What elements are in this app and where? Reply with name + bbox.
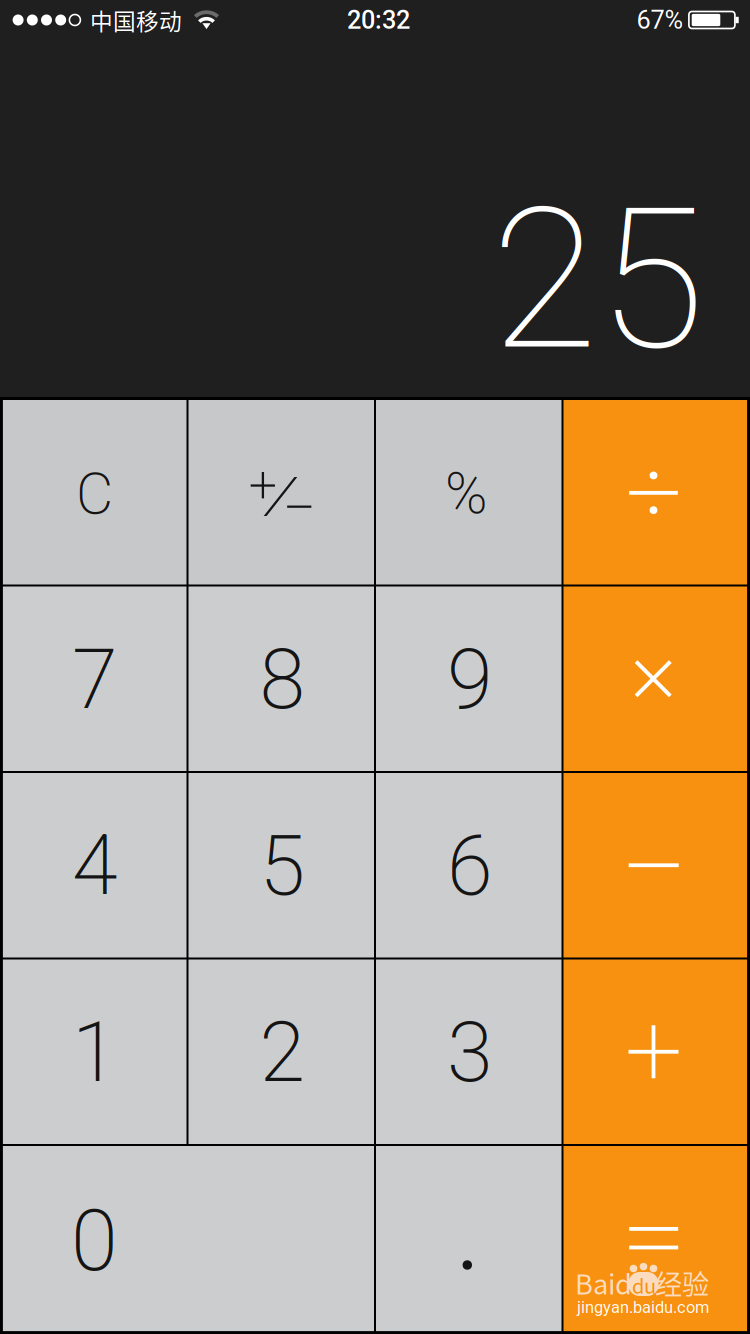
button[interactable] — [3, 959, 186, 1144]
button[interactable] — [563, 400, 747, 584]
button[interactable] — [188, 959, 374, 1144]
staticText: du — [632, 1270, 656, 1299]
button[interactable] — [376, 1146, 561, 1331]
staticText: 5 — [259, 818, 305, 915]
staticText: 25 — [491, 166, 705, 394]
button[interactable] — [188, 586, 374, 771]
staticText: jingyan.baidu.com — [577, 1298, 709, 1317]
button[interactable] — [188, 773, 374, 957]
staticText: 6 — [447, 818, 493, 915]
staticText: 3 — [447, 1004, 493, 1101]
button[interactable] — [563, 586, 747, 771]
button[interactable] — [376, 586, 561, 771]
staticText: 4 — [72, 818, 118, 915]
button[interactable] — [376, 400, 561, 584]
button[interactable] — [376, 959, 561, 1144]
staticText: 8 — [259, 631, 305, 728]
button[interactable] — [3, 586, 186, 771]
button[interactable]: 25 — [0, 110, 705, 450]
staticText: 0 — [71, 1191, 118, 1291]
staticText: 中国移动 — [90, 4, 182, 36]
staticText: 20:32 — [347, 5, 410, 35]
staticText: % — [445, 460, 488, 527]
staticText: 1 — [72, 1004, 118, 1101]
button[interactable] — [563, 959, 747, 1144]
staticText: 67% — [636, 5, 683, 35]
button[interactable] — [3, 1146, 374, 1331]
staticText: 2 — [259, 1004, 305, 1101]
button[interactable] — [563, 773, 747, 957]
button[interactable] — [3, 400, 186, 584]
staticText: 9 — [447, 631, 493, 728]
button[interactable] — [563, 1146, 747, 1331]
staticText: Baidu 经验 — [575, 1263, 709, 1302]
button[interactable] — [3, 773, 186, 957]
staticText: 7 — [72, 631, 118, 728]
button[interactable] — [188, 400, 374, 584]
button[interactable] — [376, 773, 561, 957]
staticText: C — [76, 460, 113, 528]
